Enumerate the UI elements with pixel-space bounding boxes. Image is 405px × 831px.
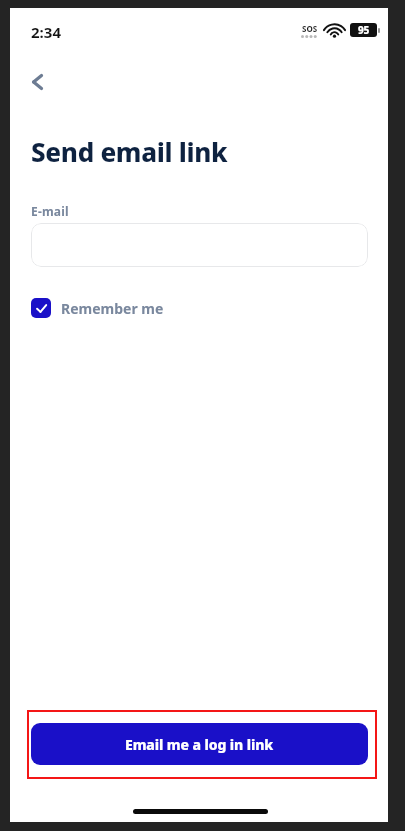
staticText: Email me a log in link — [125, 735, 274, 754]
staticText: E-mail — [31, 203, 69, 219]
staticText: Send email link — [31, 134, 228, 169]
staticText: 95 — [358, 23, 370, 37]
staticText: Remember me — [61, 299, 164, 318]
button[interactable] — [31, 223, 368, 267]
button[interactable]: Email me a log in link — [31, 723, 368, 765]
button[interactable]: Remember me — [31, 293, 164, 323]
staticText: SOS — [302, 23, 318, 34]
staticText: 2:34 — [31, 22, 61, 42]
button[interactable]: Back — [16, 60, 60, 104]
